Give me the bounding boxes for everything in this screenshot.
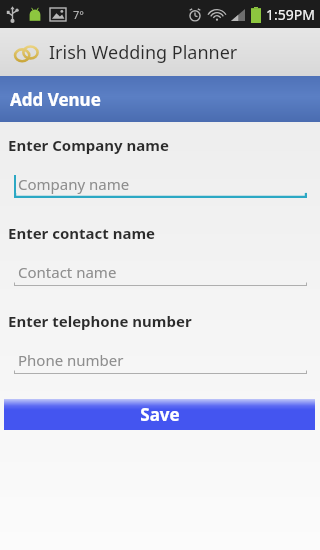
staticText: Contact name: [18, 262, 117, 282]
staticText: 7°: [73, 7, 84, 22]
button[interactable]: Company name: [14, 169, 307, 198]
button[interactable]: Contact name: [14, 257, 307, 286]
button[interactable]: Save: [4, 399, 315, 430]
staticText: Enter telephone number: [8, 311, 192, 331]
staticText: Company name: [18, 174, 130, 194]
staticText: Irish Wedding Planner: [49, 40, 238, 65]
button[interactable]: Add Venue: [0, 76, 320, 122]
staticText: 1:59PM: [266, 5, 315, 24]
staticText: Save: [140, 403, 180, 426]
staticText: Phone number: [18, 350, 124, 370]
staticText: Enter Company name: [8, 135, 169, 155]
staticText: Enter contact name: [8, 223, 156, 243]
staticText: Add Venue: [10, 88, 101, 111]
button[interactable]: Phone number: [14, 345, 307, 374]
